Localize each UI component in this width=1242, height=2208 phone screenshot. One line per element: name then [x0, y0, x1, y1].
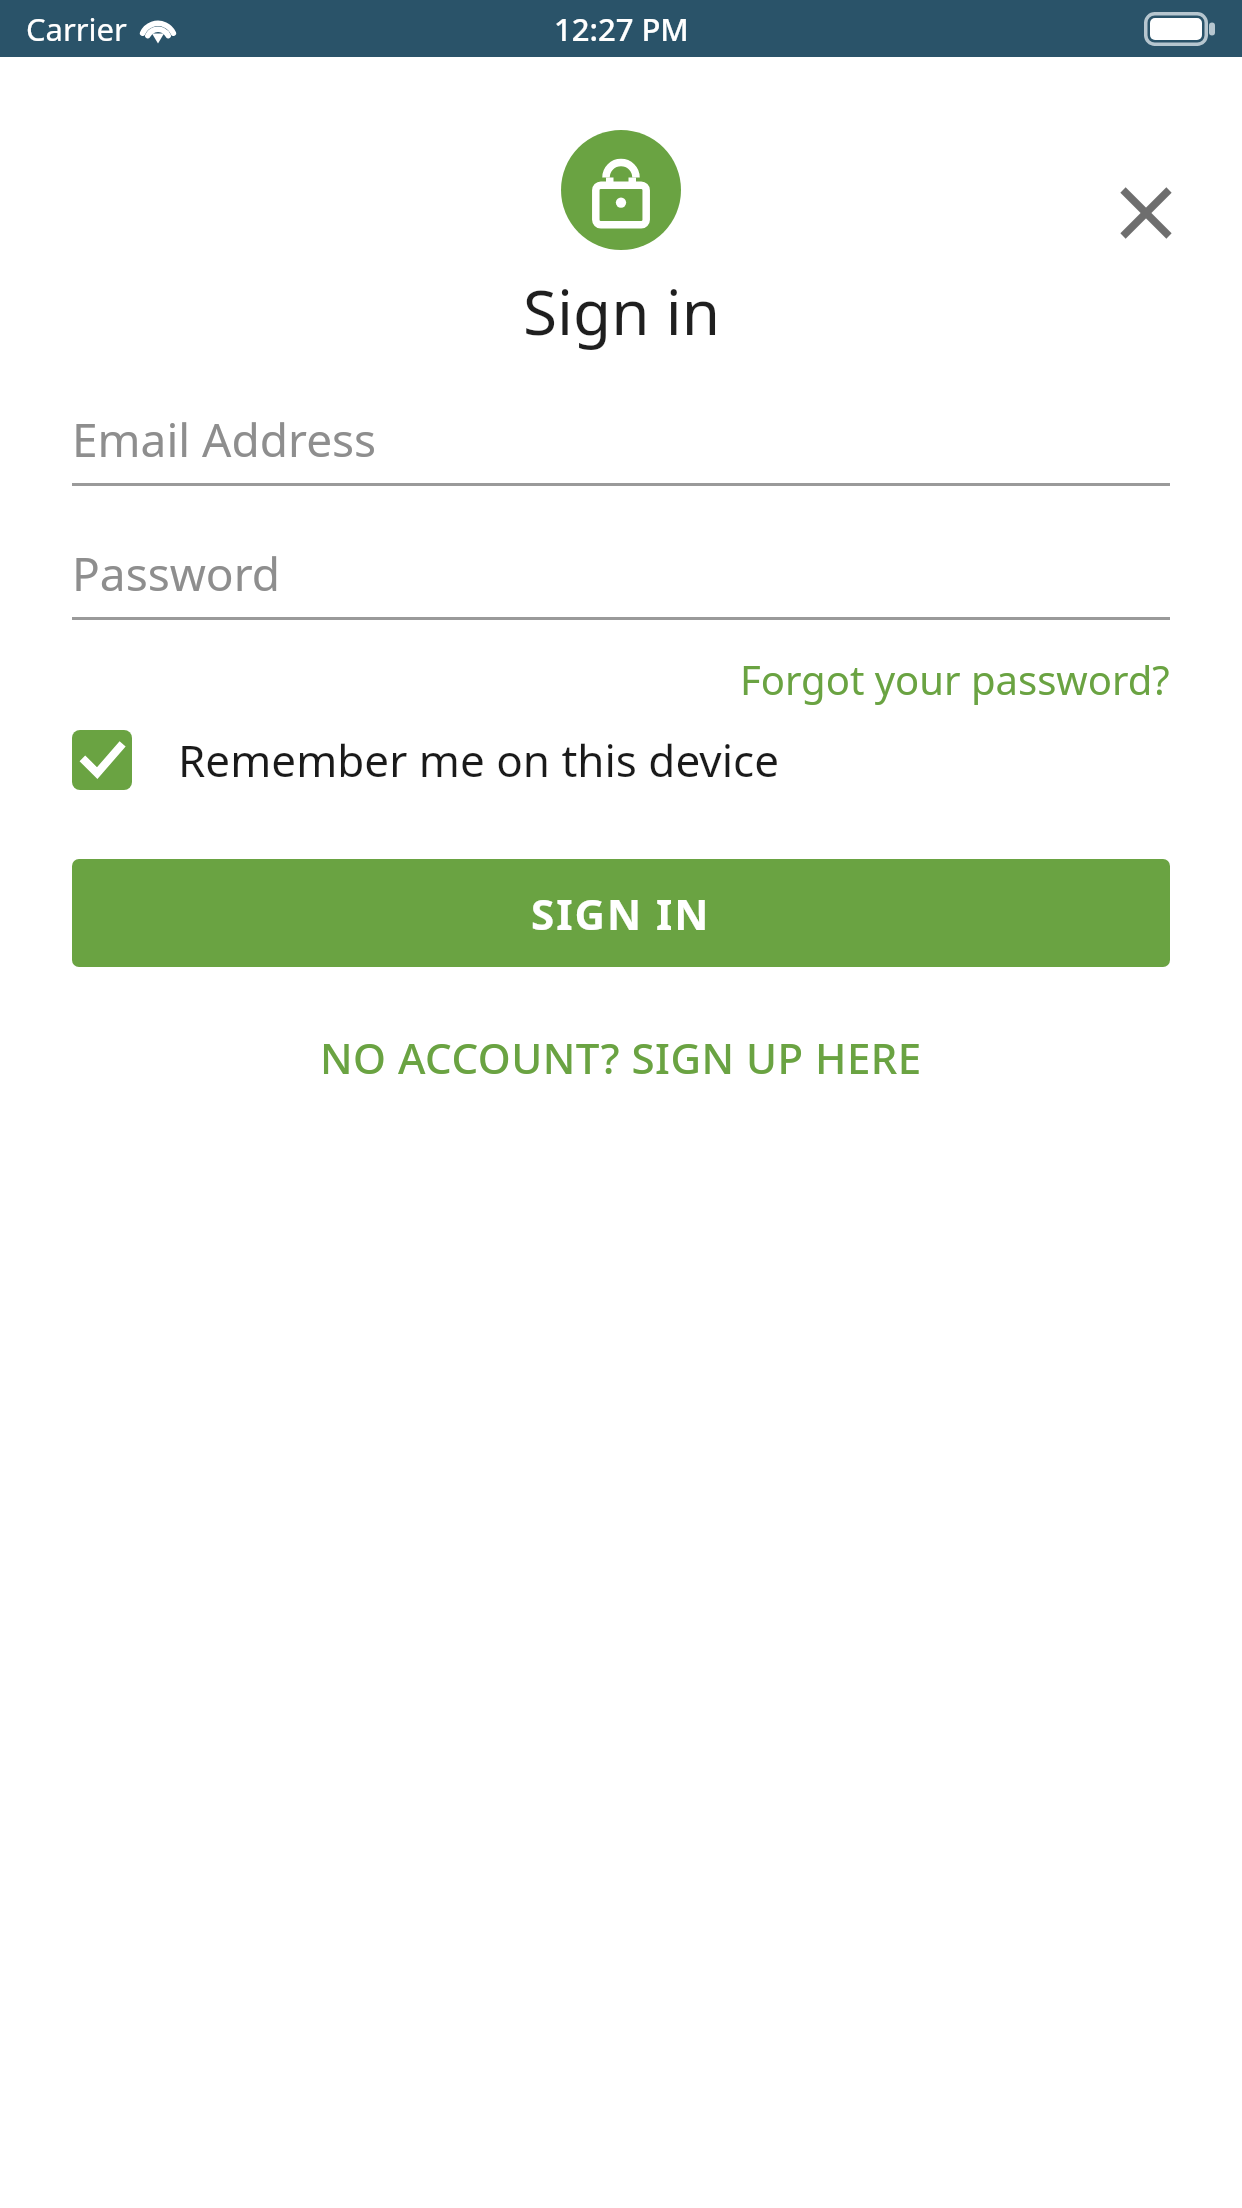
button[interactable]: Forgot your password?	[740, 648, 1170, 710]
staticText: Forgot your password?	[740, 652, 1170, 706]
button[interactable]: Password	[72, 539, 1170, 620]
staticText: NO ACCOUNT? SIGN UP HERE	[320, 1029, 922, 1086]
button[interactable]: NO ACCOUNT? SIGN UP HERE	[304, 1019, 938, 1096]
staticText: 12:27 PM	[554, 8, 689, 50]
button[interactable]: Close	[1086, 153, 1206, 273]
staticText: Email Address	[72, 408, 377, 471]
staticText: Carrier	[26, 8, 127, 50]
staticText: Password	[72, 542, 281, 605]
button[interactable]: Email Address	[72, 405, 1170, 486]
button[interactable]: SIGN IN	[72, 859, 1170, 967]
button[interactable]: Remember me on this device	[72, 730, 1170, 790]
staticText: Remember me on this device	[178, 730, 779, 790]
staticText: Sign in	[523, 269, 720, 353]
staticText: SIGN IN	[531, 885, 711, 942]
